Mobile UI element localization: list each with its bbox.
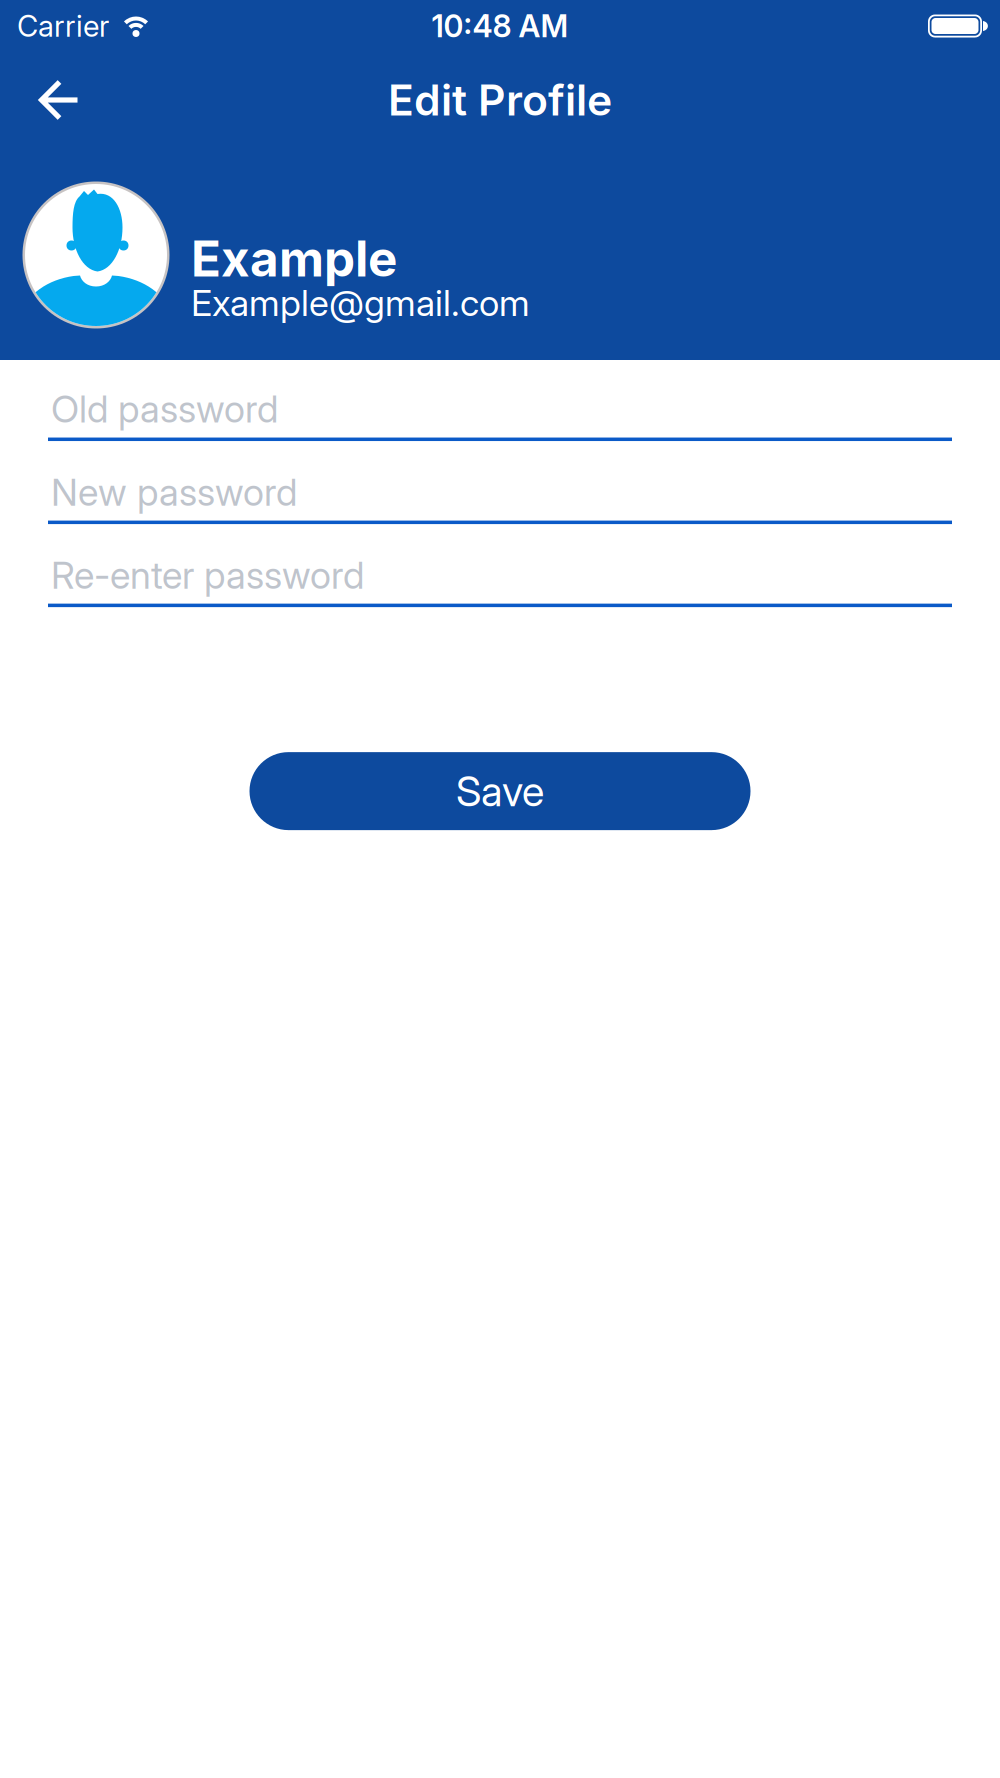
- button[interactable]: Re-enter password: [48, 553, 952, 607]
- staticText: Example: [191, 229, 397, 288]
- staticText: New password: [51, 470, 297, 514]
- button[interactable]: Back: [0, 70, 80, 129]
- button[interactable]: Old password: [48, 387, 952, 441]
- staticText: Re-enter password: [51, 553, 364, 597]
- staticText: Edit Profile: [388, 75, 612, 125]
- staticText: Old password: [51, 387, 278, 431]
- button[interactable]: New password: [48, 470, 952, 524]
- staticText: Save: [456, 767, 544, 815]
- staticText: Carrier: [17, 9, 109, 43]
- staticText: 10:48 AM: [431, 8, 568, 44]
- staticText: Example@gmail.com: [191, 282, 530, 324]
- button[interactable]: Save: [249, 752, 750, 830]
